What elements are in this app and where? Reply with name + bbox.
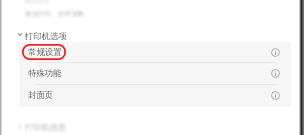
staticText: 封面页 [28,90,54,101]
button[interactable]: 常规设置 [19,42,291,63]
button[interactable]: Info about 封面页 [271,91,280,100]
staticText: 常规设置 [28,47,62,58]
staticText: 逐张打印、所有张数 [25,10,85,18]
button[interactable]: 封面页 [19,85,291,106]
button[interactable]: 打印机信息 [14,119,84,135]
button[interactable]: Info about 特殊功能 [271,69,280,78]
button[interactable]: Info about 常规设置 [271,48,280,57]
staticText: 打印机选项 [25,31,67,42]
button[interactable]: 打印机选项 [14,29,84,43]
staticText: 纸张处理 [25,0,50,5]
button[interactable]: 特殊功能 [19,63,291,84]
staticText: 特殊功能 [28,68,62,79]
staticText: 打印机信息 [25,122,66,132]
